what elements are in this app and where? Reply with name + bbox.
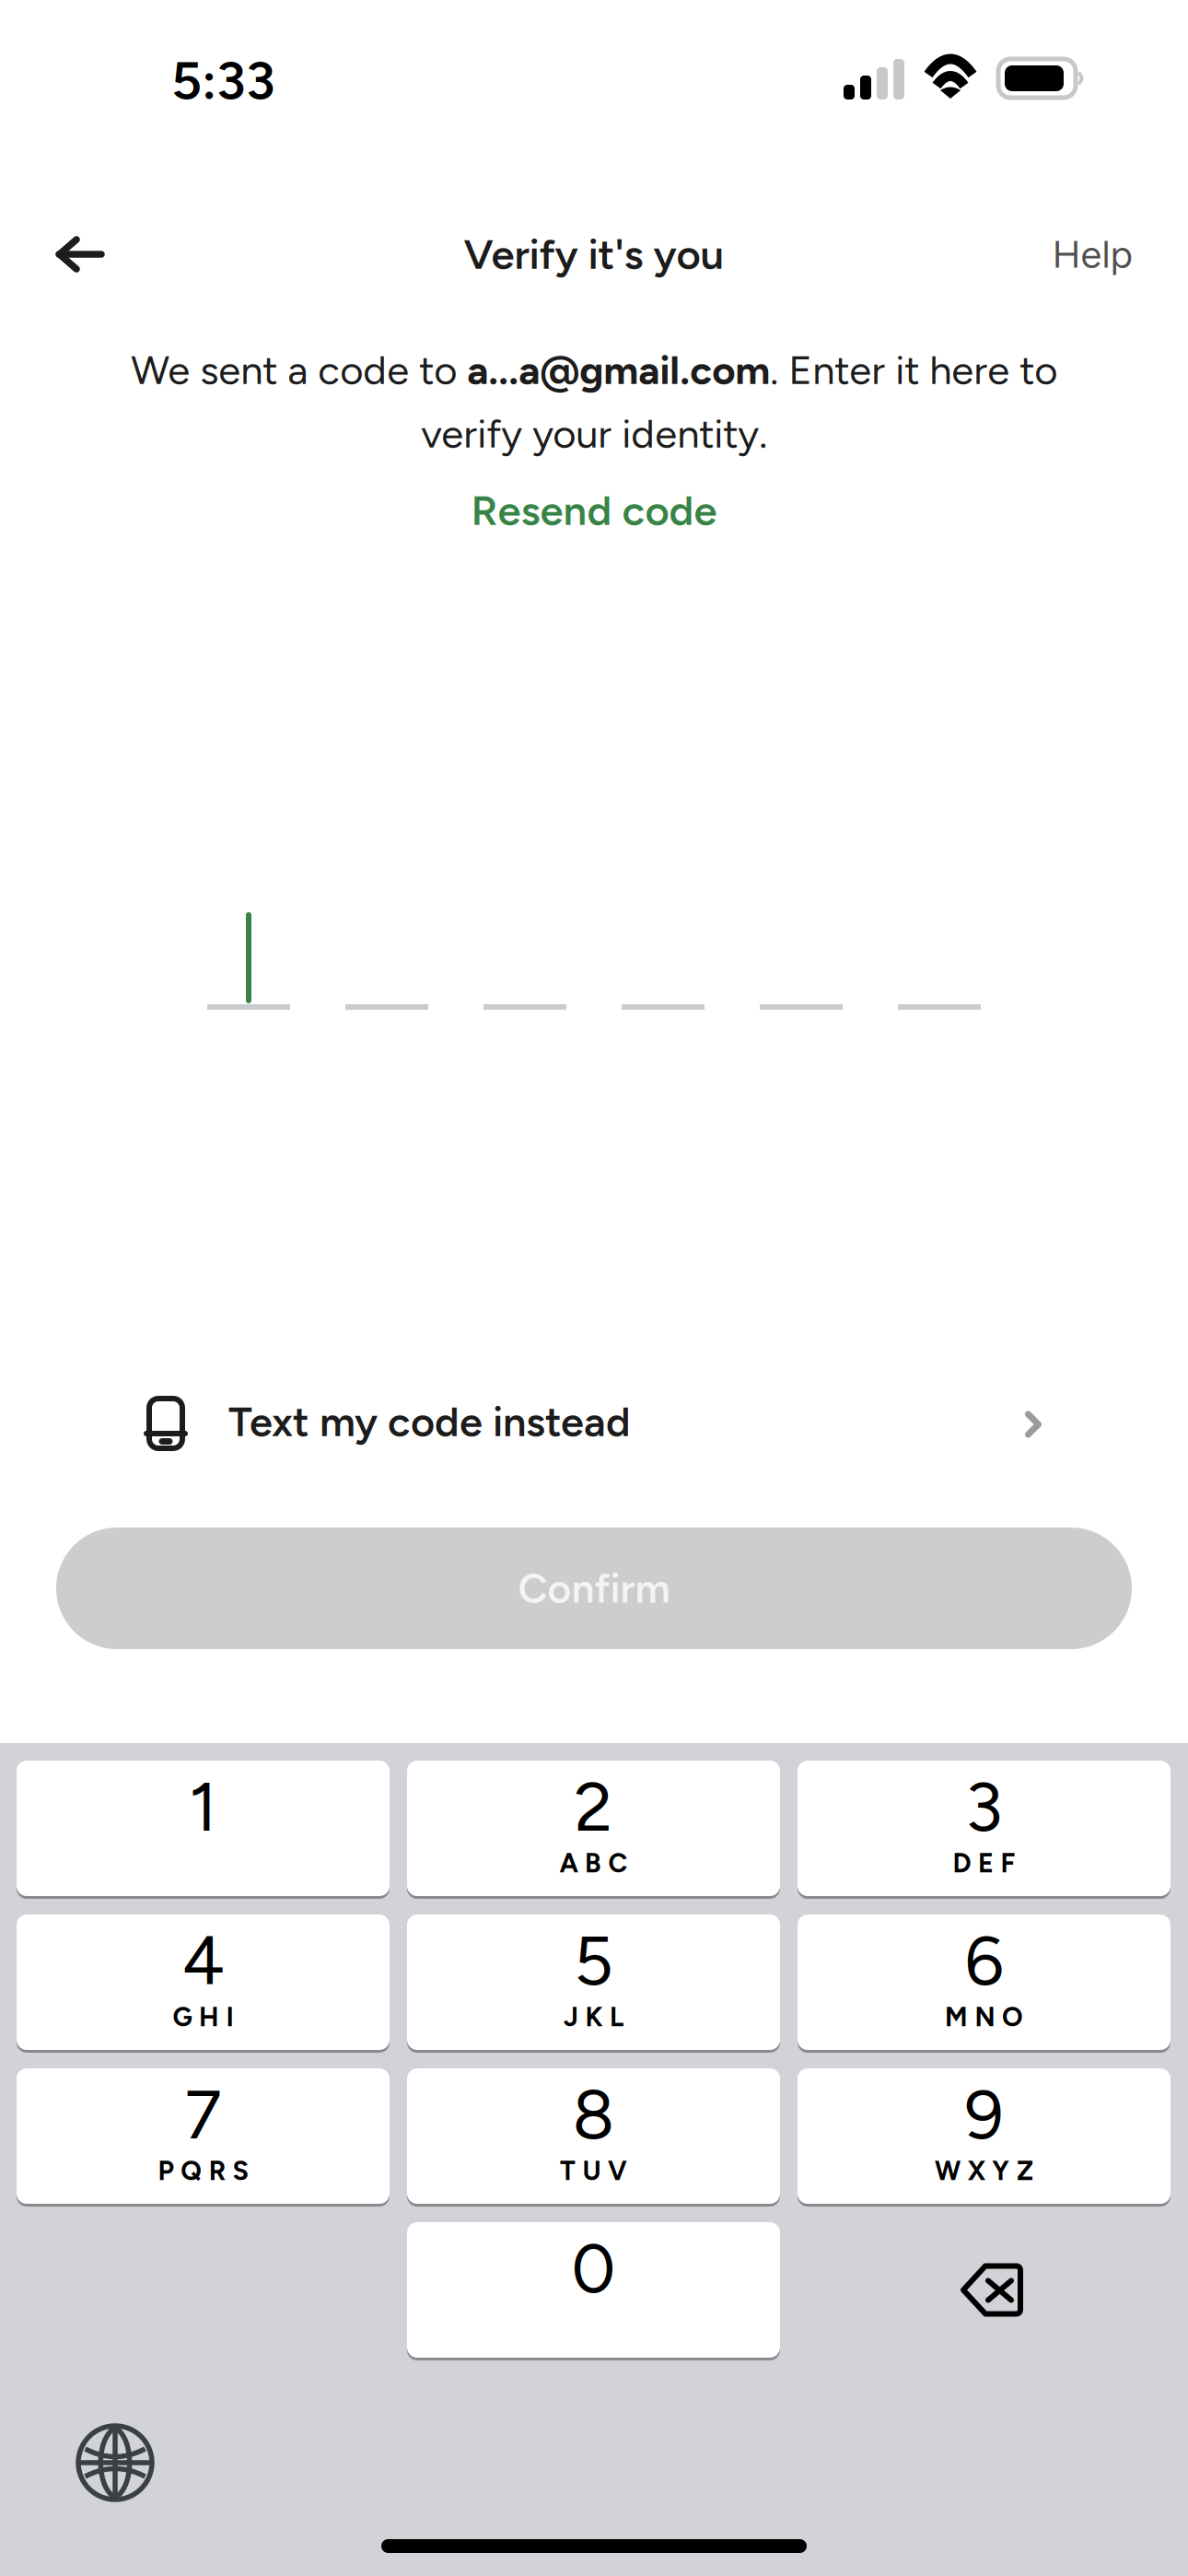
staticText: Confirm xyxy=(518,1564,670,1613)
staticText: MNO xyxy=(945,2001,1023,2033)
staticText: 6 xyxy=(965,1919,1003,2002)
staticText: ABC xyxy=(559,1847,628,1879)
button[interactable]: 0 xyxy=(407,2222,780,2358)
staticText: WXYZ xyxy=(935,2155,1033,2187)
button[interactable]: 8 xyxy=(407,2068,780,2204)
staticText: JKL xyxy=(564,2001,624,2033)
button[interactable]: Text my code instead xyxy=(146,1379,1067,1468)
staticText: TUV xyxy=(560,2155,627,2187)
button[interactable]: 3 xyxy=(798,1761,1171,1896)
button[interactable]: 6 xyxy=(798,1914,1171,2050)
staticText: 1 xyxy=(189,1765,217,1848)
button[interactable]: 1 xyxy=(17,1761,390,1896)
staticText: DEF xyxy=(953,1847,1015,1879)
staticText: 7 xyxy=(185,2073,221,2156)
button[interactable]: Next keyboard xyxy=(46,2407,184,2518)
staticText: PQRS xyxy=(158,2155,248,2187)
staticText: 8 xyxy=(572,2073,615,2156)
button[interactable]: 2 xyxy=(407,1761,780,1896)
staticText: GHI xyxy=(173,2001,234,2033)
button[interactable]: Back xyxy=(0,210,160,299)
staticText: We sent a code to a...a@gmail.com. Enter… xyxy=(131,346,1057,457)
button[interactable]: 4 xyxy=(17,1914,390,2050)
staticText: 4 xyxy=(182,1919,224,2002)
button[interactable]: 9 xyxy=(798,2068,1171,2204)
staticText: 9 xyxy=(965,2073,1003,2156)
button[interactable]: Resend code xyxy=(410,477,778,544)
staticText: Help xyxy=(1052,231,1132,277)
staticText: Verify it's you xyxy=(464,229,724,279)
staticText: 2 xyxy=(574,1765,613,1848)
button[interactable]: 5 xyxy=(407,1914,780,2050)
staticText: 5 xyxy=(574,1919,613,2002)
staticText: 0 xyxy=(571,2227,616,2309)
button[interactable]: Help xyxy=(1031,210,1153,299)
button[interactable]: Confirm xyxy=(56,1528,1132,1649)
staticText: 3 xyxy=(965,1765,1003,1848)
staticText: Resend code xyxy=(471,485,717,535)
button[interactable]: 7 xyxy=(17,2068,390,2204)
staticText: 5:33 xyxy=(171,49,275,112)
button[interactable]: Delete xyxy=(798,2222,1171,2358)
staticText: Text my code instead xyxy=(228,1397,631,1447)
